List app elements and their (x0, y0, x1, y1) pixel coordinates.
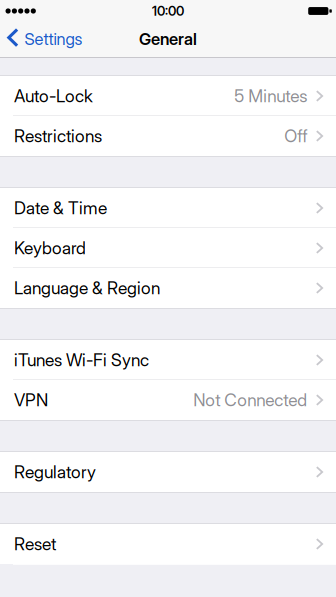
staticText: Settings (24, 29, 82, 49)
staticText: General (139, 29, 197, 49)
button[interactable]: Regulatory (0, 452, 336, 492)
button[interactable]: Reset (0, 524, 336, 564)
staticText: Keyboard (14, 237, 86, 258)
button[interactable]: Auto-Lock (0, 76, 336, 116)
button[interactable]: Keyboard (0, 228, 336, 268)
staticText: 5 Minutes (234, 85, 307, 106)
button[interactable]: Date & Time (0, 188, 336, 228)
button[interactable]: Restrictions (0, 116, 336, 156)
staticText: Language & Region (14, 277, 160, 298)
staticText: Not Connected (193, 389, 307, 410)
button[interactable]: Language & Region (0, 268, 336, 308)
staticText: Regulatory (14, 461, 96, 482)
staticText: Date & Time (14, 197, 107, 218)
button[interactable]: iTunes Wi-Fi Sync (0, 340, 336, 380)
button[interactable]: VPN (0, 380, 336, 420)
staticText: Off (284, 125, 307, 146)
staticText: Reset (14, 533, 56, 554)
staticText: iTunes Wi-Fi Sync (14, 349, 149, 370)
staticText: Restrictions (14, 125, 102, 146)
button[interactable]: Settings (0, 21, 88, 57)
staticText: VPN (14, 389, 48, 410)
staticText: Auto-Lock (14, 85, 93, 106)
staticText: 10:00 (152, 3, 184, 19)
